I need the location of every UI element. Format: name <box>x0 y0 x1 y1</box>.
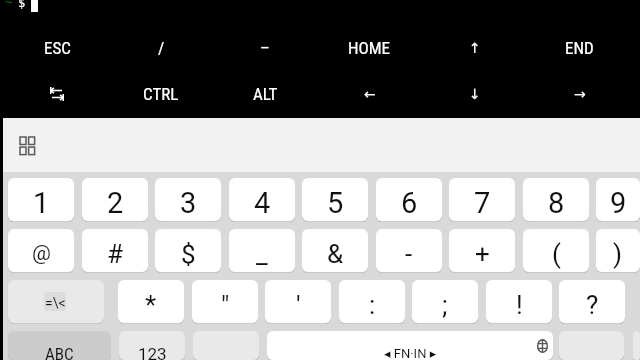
staticText: =\< <box>45 295 66 311</box>
button[interactable]: → <box>527 71 632 117</box>
staticText: 4 <box>254 186 271 220</box>
button[interactable]: CTRL <box>109 71 213 117</box>
staticText: ? <box>586 290 599 320</box>
staticText: – <box>260 38 270 58</box>
button[interactable]: ↑ <box>422 25 527 71</box>
button[interactable]: @ <box>8 229 74 272</box>
button[interactable]: ! <box>486 280 552 323</box>
button[interactable]: * <box>118 280 184 323</box>
button[interactable]: Backspace <box>633 331 640 360</box>
button[interactable]: $ <box>155 229 221 272</box>
staticText: 3 <box>180 186 197 220</box>
staticText: : <box>369 290 376 320</box>
button[interactable]: 1 <box>8 178 74 221</box>
button[interactable]: ALT <box>213 71 317 117</box>
button[interactable]: - <box>376 229 442 272</box>
staticText: ) <box>613 239 623 269</box>
button[interactable]: 123 <box>119 331 185 360</box>
staticText: @ <box>32 241 51 266</box>
staticText: / <box>158 38 165 58</box>
staticText: ! <box>516 290 523 320</box>
button[interactable]: & <box>302 229 368 272</box>
button[interactable]: ↓ <box>422 71 527 117</box>
staticText: $ <box>181 239 196 269</box>
button[interactable]: ; <box>412 280 478 323</box>
button[interactable]: 5 <box>302 178 368 221</box>
button[interactable]: ← <box>317 71 422 117</box>
button[interactable]: – <box>213 25 317 71</box>
staticText: _ <box>256 239 268 269</box>
staticText: HOME <box>348 38 391 58</box>
staticText: ← <box>364 86 376 102</box>
staticText: 1 <box>33 186 50 220</box>
staticText: 7 <box>474 186 491 220</box>
button[interactable]: : <box>339 280 405 323</box>
staticText: 5 <box>327 186 344 220</box>
button[interactable]: END <box>527 25 632 71</box>
staticText: ESC <box>44 38 71 58</box>
staticText: + <box>475 239 490 269</box>
staticText: # <box>107 239 124 269</box>
staticText: ◂ FN·IN ▸ <box>384 346 437 360</box>
staticText: 9 <box>610 186 627 220</box>
button[interactable]: Tab <box>5 71 109 117</box>
staticText: $ <box>18 0 26 10</box>
staticText: CTRL <box>143 84 179 104</box>
button[interactable]: ? <box>559 280 625 323</box>
button[interactable]: ESC <box>5 25 109 71</box>
staticText: & <box>327 239 344 269</box>
button[interactable]: 7 <box>449 178 515 221</box>
staticText: 6 <box>401 186 418 220</box>
button[interactable]: + <box>449 229 515 272</box>
button[interactable]: # <box>82 229 148 272</box>
staticText: * <box>145 290 157 320</box>
button[interactable]: _ <box>229 229 295 272</box>
staticText: END <box>565 38 594 58</box>
staticText: ABC <box>45 344 74 360</box>
staticText: ALT <box>253 84 278 104</box>
button[interactable]: Clipboard <box>15 133 39 157</box>
staticText: " <box>221 290 230 320</box>
button[interactable]: =\< <box>8 280 104 323</box>
button[interactable]: 6 <box>376 178 442 221</box>
button[interactable]: Space <box>267 331 553 360</box>
button[interactable]: 8 <box>523 178 589 221</box>
button[interactable]: ) <box>596 229 640 272</box>
staticText: ' <box>296 290 301 320</box>
staticText: - <box>405 239 413 269</box>
button[interactable]: 9 <box>596 178 640 221</box>
staticText: ↑ <box>469 40 481 56</box>
button[interactable]: ( <box>523 229 589 272</box>
staticText: → <box>574 86 586 102</box>
button[interactable]: " <box>192 280 258 323</box>
staticText: ; <box>442 290 448 320</box>
staticText: ↓ <box>469 86 481 102</box>
staticText: ( <box>552 239 561 269</box>
button[interactable]: ' <box>265 280 331 323</box>
staticText: 2 <box>107 186 124 220</box>
button[interactable]: 3 <box>155 178 221 221</box>
staticText: 123 <box>138 344 167 360</box>
button[interactable]: 2 <box>82 178 148 221</box>
button[interactable]: / <box>109 25 213 71</box>
button[interactable]: HOME <box>317 25 422 71</box>
staticText: ~ <box>5 0 13 9</box>
button[interactable]: ABC letters <box>8 331 111 360</box>
button[interactable]: 4 <box>229 178 295 221</box>
staticText: 8 <box>548 186 565 220</box>
